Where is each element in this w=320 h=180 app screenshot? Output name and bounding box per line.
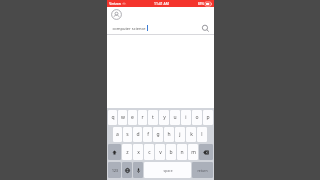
staticText: y [163,114,166,121]
staticText: u [173,114,177,121]
button[interactable]: e [128,110,137,125]
button[interactable]: 123 [108,162,121,178]
staticText: w [121,114,125,121]
button[interactable]: p [203,110,213,125]
button[interactable]: d [133,127,142,142]
staticText: 123 [112,168,118,173]
button[interactable]: c [144,144,154,160]
staticText: r [141,114,144,121]
button[interactable]: t [148,110,158,125]
staticText: 11:41 AM [154,1,169,6]
button[interactable]: a [113,127,122,142]
staticText: h [167,131,171,138]
button[interactable]: Search [201,24,210,33]
button[interactable]: f [143,127,152,142]
staticText: o [195,114,199,121]
staticText: g [156,131,160,138]
staticText: c [148,149,151,156]
staticText: a [116,131,119,138]
button[interactable]: i [181,110,191,125]
staticText: Verizon [109,2,121,6]
button[interactable]: n [177,144,187,160]
button[interactable]: Profile [111,9,122,20]
button[interactable]: m [188,144,198,160]
button[interactable]: g [153,127,163,142]
button[interactable]: v [155,144,165,160]
button[interactable]: h [164,127,174,142]
staticText: b [169,149,173,156]
button[interactable]: j [175,127,185,142]
staticText: z [126,149,129,156]
staticText: m [191,149,196,156]
button[interactable]: x [133,144,143,160]
button[interactable]: q [108,110,117,125]
staticText: i [185,114,187,121]
staticText: 85% [198,2,204,6]
staticText: space [163,168,173,173]
button[interactable]: space [144,162,191,178]
staticText: t [152,114,154,121]
staticText: return [197,168,208,173]
staticText: computer science [112,26,146,31]
staticText: e [131,114,134,121]
button[interactable]: k [186,127,196,142]
button[interactable]: Change keyboard [122,162,132,178]
staticText: x [137,149,140,156]
staticText: l [201,131,203,138]
button[interactable]: y [159,110,169,125]
staticText: q [111,114,115,121]
staticText: f [147,131,149,138]
staticText: k [190,131,193,138]
staticText: v [159,149,162,156]
button[interactable]: s [123,127,132,142]
staticText: j [179,131,181,138]
button[interactable]: return [192,162,213,178]
button[interactable]: Voice input [133,162,143,178]
button[interactable]: r [138,110,147,125]
staticText: p [206,114,210,121]
button[interactable]: o [192,110,202,125]
staticText: n [180,149,184,156]
button[interactable]: Delete [199,144,213,160]
staticText: s [126,131,129,138]
button[interactable]: computer science [107,22,214,34]
button[interactable]: z [122,144,132,160]
button[interactable]: Shift [108,144,121,160]
button[interactable]: u [170,110,180,125]
button[interactable]: b [166,144,176,160]
button[interactable]: l [197,127,207,142]
button[interactable]: w [118,110,127,125]
staticText: d [136,131,140,138]
